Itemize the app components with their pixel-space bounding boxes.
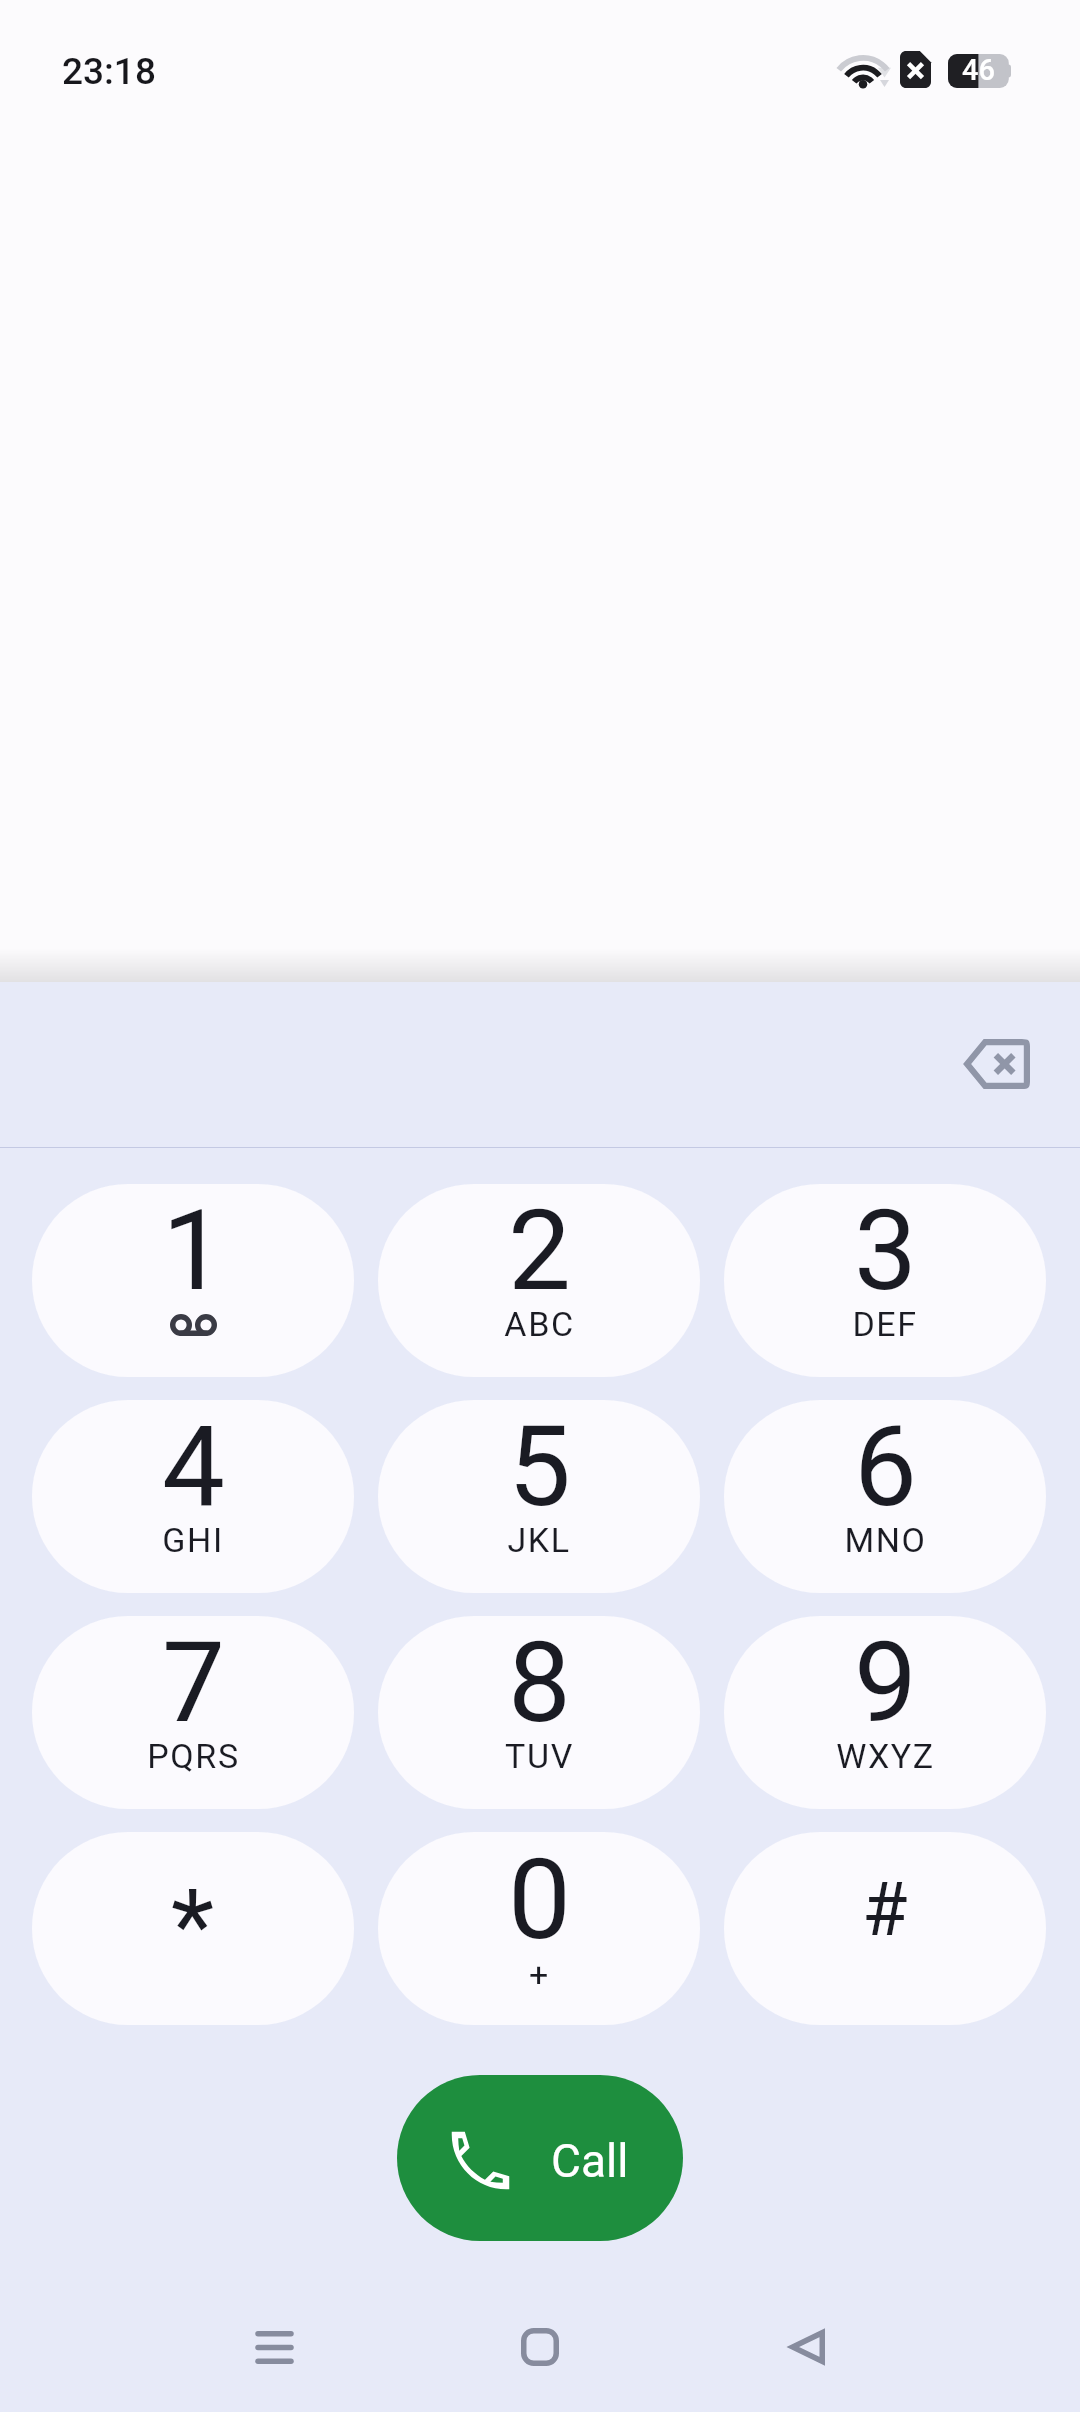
button[interactable]: 7 (32, 1616, 354, 1809)
staticText: WXYZ (836, 1736, 935, 1776)
staticText: + (529, 1954, 549, 1994)
button[interactable]: Back (762, 2302, 852, 2392)
staticText: Call (551, 2134, 629, 2188)
staticText: * (171, 1867, 215, 1984)
staticText: # (862, 1866, 908, 1953)
button[interactable]: 1 (32, 1184, 354, 1377)
staticText: 6 (854, 1401, 917, 1532)
staticText: 2 (508, 1185, 571, 1316)
staticText: 4 (162, 1401, 225, 1532)
staticText: 1 (162, 1185, 225, 1316)
staticText: 46 (962, 53, 995, 87)
staticText: 0 (508, 1834, 571, 1965)
button[interactable]: Home (495, 2302, 585, 2392)
button[interactable]: Pound (724, 1832, 1046, 2025)
button[interactable]: 5 (378, 1400, 700, 1593)
button[interactable]: Star (32, 1832, 354, 2025)
staticText: ABC (504, 1304, 575, 1344)
button[interactable]: Recents (229, 2302, 319, 2392)
button[interactable]: 6 (724, 1400, 1046, 1593)
staticText: 9 (854, 1617, 917, 1748)
staticText: 3 (854, 1185, 917, 1316)
staticText: 5 (508, 1401, 571, 1532)
button[interactable]: 4 (32, 1400, 354, 1593)
button[interactable]: Zero (378, 1832, 700, 2025)
button[interactable]: 8 (378, 1616, 700, 1809)
staticText: 23:18 (62, 50, 156, 93)
staticText: JKL (507, 1520, 571, 1560)
staticText: DEF (852, 1304, 918, 1344)
staticText: 8 (508, 1617, 571, 1748)
button[interactable]: Call (397, 2075, 683, 2241)
button[interactable]: Backspace (949, 1016, 1045, 1112)
button[interactable]: 3 (724, 1184, 1046, 1377)
button[interactable]: 9 (724, 1616, 1046, 1809)
staticText: GHI (162, 1520, 224, 1560)
staticText: PQRS (147, 1736, 240, 1776)
staticText: 7 (162, 1617, 225, 1748)
button[interactable]: 2 (378, 1184, 700, 1377)
staticText: MNO (844, 1520, 927, 1560)
staticText: TUV (505, 1736, 574, 1776)
